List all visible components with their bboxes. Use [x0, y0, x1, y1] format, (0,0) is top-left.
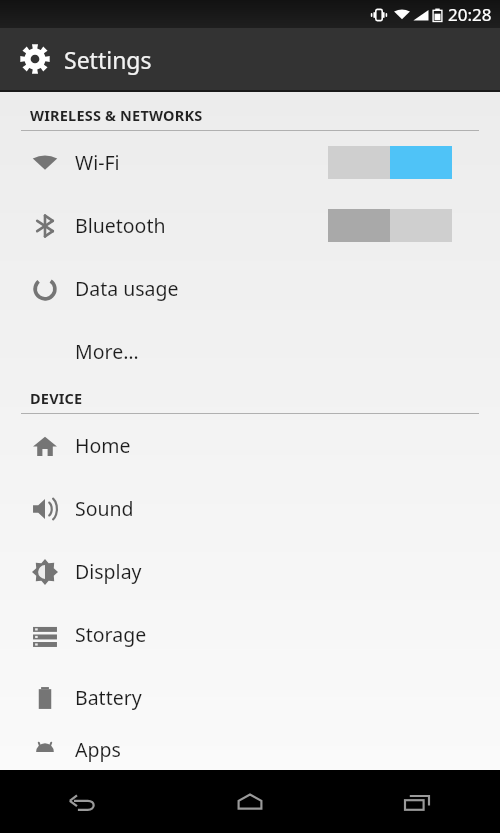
button[interactable]: Bluetooth	[0, 194, 500, 257]
button[interactable]: Recent apps	[333, 770, 500, 833]
staticText: Wi-Fi	[75, 149, 120, 176]
staticText: More…	[75, 338, 139, 365]
button[interactable]: Display	[0, 540, 500, 603]
staticText: WIRELESS & NETWORKS	[30, 105, 203, 125]
staticText: Home	[75, 432, 131, 459]
staticText: Display	[75, 558, 142, 585]
staticText: Settings	[64, 44, 152, 75]
button[interactable]: Back	[0, 770, 166, 833]
button[interactable]: More…	[0, 320, 500, 383]
button[interactable]: Data usage	[0, 257, 500, 320]
button[interactable]: Home	[166, 770, 333, 833]
staticText: Data usage	[75, 275, 179, 302]
staticText: Battery	[75, 684, 142, 711]
button[interactable]: Wi-Fi	[0, 131, 500, 194]
staticText: 20:28	[448, 3, 492, 26]
staticText: Apps	[75, 736, 121, 763]
staticText: Storage	[75, 621, 147, 648]
button[interactable]: Storage	[0, 603, 500, 666]
button[interactable]: Wi-Fi on	[328, 146, 452, 179]
button[interactable]: Home	[0, 414, 500, 477]
staticText: DEVICE	[30, 388, 83, 408]
button[interactable]: Battery	[0, 666, 500, 729]
staticText: Sound	[75, 495, 134, 522]
button[interactable]: Settings	[0, 28, 500, 90]
staticText: Bluetooth	[75, 212, 166, 239]
button[interactable]: Bluetooth off	[328, 209, 452, 242]
button[interactable]: Sound	[0, 477, 500, 540]
button[interactable]: Apps	[0, 729, 500, 770]
